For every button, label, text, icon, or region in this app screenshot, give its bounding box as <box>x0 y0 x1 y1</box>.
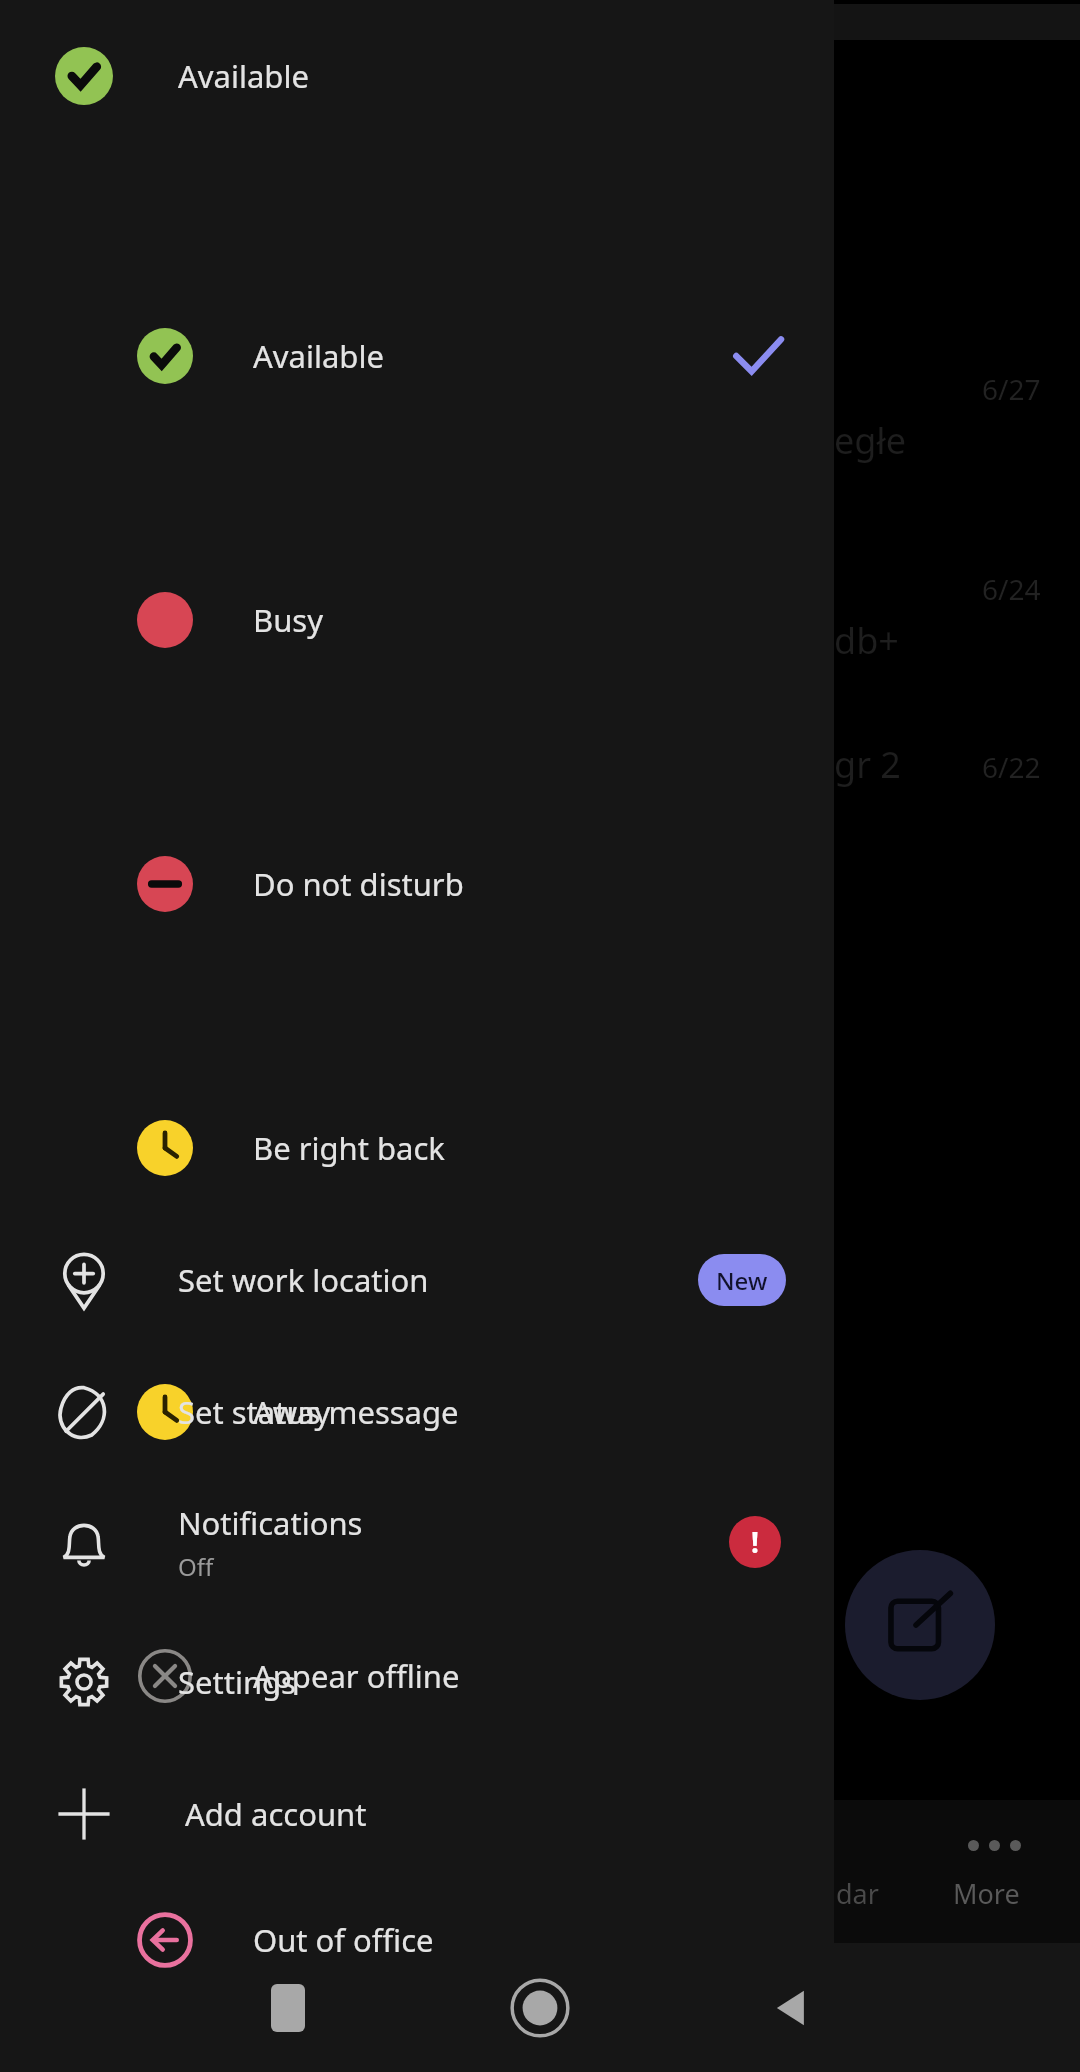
staticText: Busy <box>253 599 323 641</box>
button[interactable]: Do not disturb <box>0 818 834 950</box>
staticText: Set status message <box>178 1391 459 1433</box>
button[interactable]: Available <box>0 290 834 422</box>
staticText: db+ <box>834 616 899 665</box>
button[interactable]: Available <box>0 26 834 126</box>
staticText: Available <box>253 335 384 377</box>
button[interactable]: Be right back <box>0 1082 834 1214</box>
staticText: Add account <box>185 1793 367 1835</box>
button[interactable]: Recents <box>271 1984 305 2032</box>
button[interactable]: Compose <box>845 1550 995 1700</box>
staticText: gr 2 <box>834 740 901 789</box>
staticText: Appear offline <box>253 1655 460 1697</box>
button[interactable]: Back <box>765 1981 819 2035</box>
button[interactable]: Appear offline <box>0 1610 834 1742</box>
staticText: Do not disturb <box>253 863 464 905</box>
button[interactable]: Home <box>511 1979 569 2037</box>
staticText: More <box>953 1875 1020 1912</box>
staticText: Away <box>253 1391 331 1433</box>
button[interactable]: Settings <box>0 1616 834 1748</box>
staticText: Be right back <box>253 1127 445 1169</box>
button[interactable]: Out of office <box>0 1874 834 2006</box>
button[interactable]: Set status message <box>0 1346 834 1478</box>
staticText: ! <box>751 1523 759 1561</box>
staticText: Notifications <box>178 1502 363 1544</box>
staticText: Available <box>178 55 309 97</box>
staticText: 6/22 <box>982 748 1041 786</box>
staticText: 6/27 <box>982 370 1041 408</box>
staticText: Set work location <box>178 1259 429 1301</box>
button[interactable]: Add account <box>0 1748 834 1880</box>
button[interactable]: Set work location <box>0 1214 834 1346</box>
staticText: 6/24 <box>982 570 1041 608</box>
staticText: dar <box>836 1875 879 1912</box>
button[interactable]: Away <box>0 1346 834 1478</box>
button[interactable]: Notifications <box>0 1472 834 1612</box>
staticText: New <box>716 1264 768 1297</box>
staticText: Out of office <box>253 1919 434 1961</box>
staticText: Settings <box>178 1661 296 1703</box>
staticText: egłe <box>834 416 907 465</box>
button[interactable]: Busy <box>0 554 834 686</box>
staticText: Off <box>178 1550 214 1583</box>
